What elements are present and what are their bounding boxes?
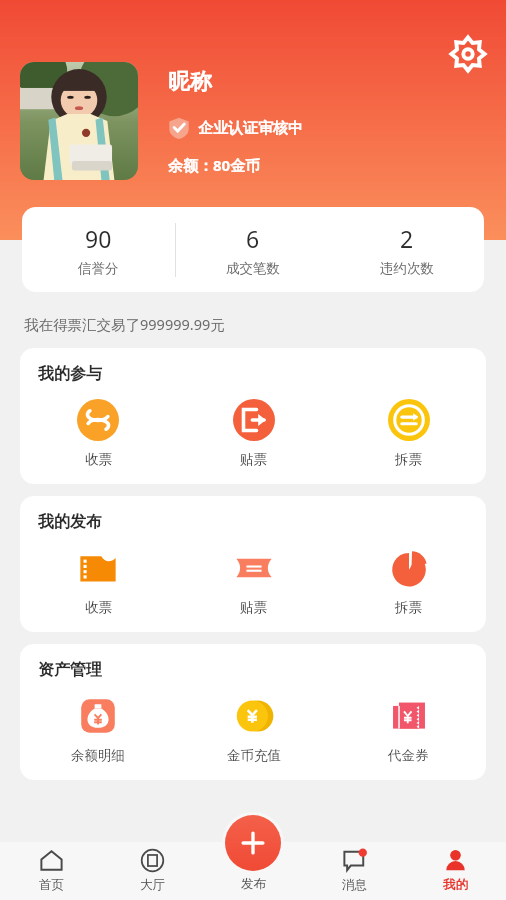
staticText: 首页 [39, 877, 64, 893]
button[interactable]: 收票 [20, 546, 176, 616]
staticText: 收票 [85, 599, 112, 616]
staticText: 拆票 [395, 451, 422, 468]
staticText: 大厅 [140, 877, 165, 893]
staticText: 贴票 [240, 599, 267, 616]
button[interactable]: 我的 [405, 842, 506, 900]
staticText: 昵称 [168, 68, 212, 96]
button[interactable]: Settings [450, 36, 486, 72]
staticText: 信誉分 [78, 260, 119, 277]
staticText: 余额：80金币 [168, 155, 261, 175]
staticText: 90 [85, 223, 112, 254]
button[interactable]: 余额明细 [20, 694, 176, 764]
button[interactable]: 金币充值 [176, 694, 331, 764]
button[interactable]: 首页 [0, 842, 102, 900]
button[interactable]: 90 [22, 207, 175, 292]
button[interactable]: 贴票 [176, 546, 331, 616]
staticText: 消息 [342, 877, 367, 893]
staticText: 企业认证审核中 [198, 119, 303, 138]
button[interactable]: 发布 [203, 812, 303, 900]
button[interactable]: 2 [330, 207, 484, 292]
staticText: 我的参与 [38, 364, 102, 384]
staticText: 我的 [443, 877, 468, 893]
button[interactable]: 拆票 [331, 546, 486, 616]
button[interactable]: 拆票 [331, 398, 486, 468]
staticText: 拆票 [395, 599, 422, 616]
staticText: 代金券 [388, 747, 429, 764]
staticText: 违约次数 [380, 260, 434, 277]
button[interactable]: 收票 [20, 398, 176, 468]
staticText: 成交笔数 [226, 260, 280, 277]
button[interactable]: 6 [176, 207, 330, 292]
staticText: 余额明细 [71, 747, 125, 764]
staticText: 我在得票汇交易了999999.99元 [24, 314, 225, 334]
staticText: 2 [400, 223, 414, 254]
button[interactable]: 代金券 [331, 694, 486, 764]
staticText: 发布 [241, 876, 266, 892]
button[interactable]: 大厅 [102, 842, 203, 900]
staticText: 6 [246, 223, 260, 254]
staticText: 资产管理 [38, 660, 102, 680]
staticText: 收票 [85, 451, 112, 468]
other: 发布 [225, 815, 281, 871]
staticText: 金币充值 [227, 747, 281, 764]
staticText: 贴票 [240, 451, 267, 468]
button[interactable]: 消息 [304, 842, 405, 900]
staticText: 我的发布 [38, 512, 102, 532]
button[interactable]: 贴票 [176, 398, 331, 468]
button[interactable]: Avatar [20, 62, 138, 180]
